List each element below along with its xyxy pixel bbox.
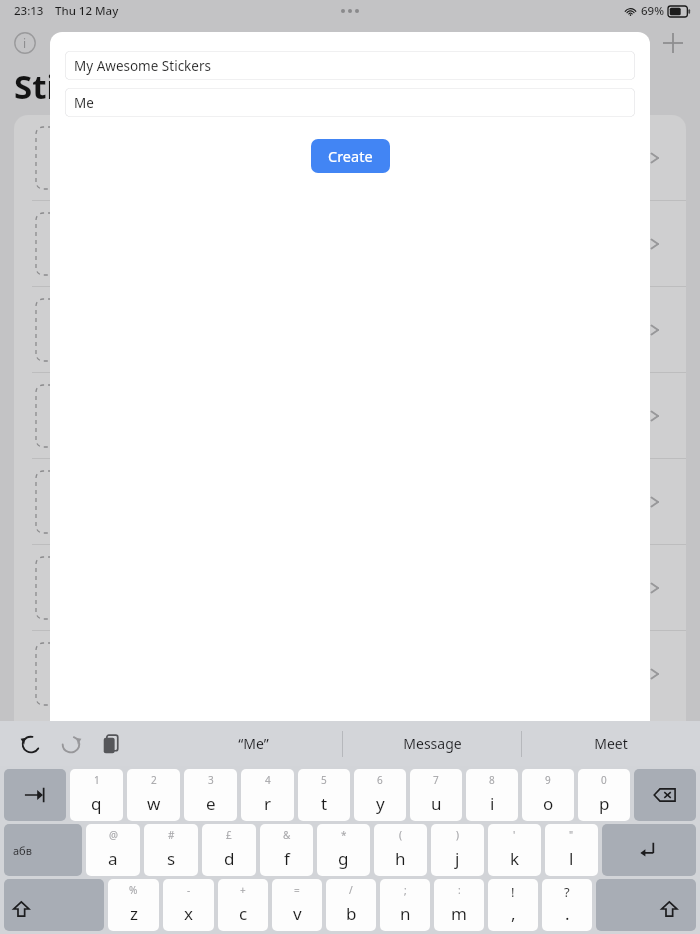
staticText: 5 bbox=[321, 773, 327, 787]
button[interactable]: Add bbox=[656, 26, 690, 60]
button[interactable]: : bbox=[434, 879, 484, 931]
staticText: 8 bbox=[489, 773, 495, 787]
staticText: ! bbox=[511, 883, 515, 901]
button[interactable]: Key bbox=[602, 824, 696, 876]
staticText: 4 bbox=[265, 773, 271, 787]
button[interactable]: @ bbox=[86, 824, 140, 876]
button[interactable]: ; bbox=[380, 879, 430, 931]
staticText: Sti bbox=[14, 64, 57, 109]
staticText: v bbox=[293, 902, 302, 925]
staticText: * bbox=[341, 828, 347, 842]
staticText: r bbox=[264, 792, 272, 815]
button[interactable]: 1 bbox=[70, 769, 123, 821]
button[interactable]: 6 bbox=[354, 769, 406, 821]
button[interactable]: Key bbox=[4, 879, 104, 931]
button[interactable]: # bbox=[144, 824, 198, 876]
button[interactable]: " bbox=[545, 824, 598, 876]
button[interactable]: - bbox=[163, 879, 214, 931]
button[interactable]: / bbox=[326, 879, 376, 931]
staticText: ( bbox=[399, 828, 402, 842]
button[interactable]: ( bbox=[374, 824, 427, 876]
staticText: Message bbox=[403, 734, 462, 753]
button[interactable]: 4 bbox=[241, 769, 294, 821]
staticText: e bbox=[206, 792, 216, 815]
button[interactable]: & bbox=[260, 824, 313, 876]
button[interactable]: = bbox=[272, 879, 322, 931]
staticText: 2 bbox=[151, 773, 157, 787]
button[interactable]: Meet bbox=[522, 721, 700, 766]
staticText: Thu 12 May bbox=[55, 3, 119, 19]
button[interactable]: Redo bbox=[58, 731, 84, 757]
button[interactable] bbox=[14, 459, 686, 544]
button[interactable]: Create bbox=[311, 139, 390, 173]
button[interactable]: * bbox=[317, 824, 370, 876]
button[interactable]: 5 bbox=[298, 769, 350, 821]
staticText: £ bbox=[226, 828, 232, 842]
button[interactable]: % bbox=[108, 879, 159, 931]
staticText: & bbox=[283, 828, 291, 842]
staticText: 1 bbox=[94, 773, 100, 787]
staticText: 7 bbox=[433, 773, 439, 787]
button[interactable]: 3 bbox=[184, 769, 237, 821]
button[interactable]: Paste bbox=[98, 731, 124, 757]
staticText: n bbox=[400, 902, 411, 925]
staticText: i bbox=[23, 35, 27, 51]
staticText: b bbox=[346, 902, 357, 925]
button[interactable]: ) bbox=[431, 824, 484, 876]
button[interactable]: Info bbox=[8, 26, 42, 60]
staticText: x bbox=[184, 902, 193, 925]
button[interactable]: ' bbox=[488, 824, 541, 876]
staticText: p bbox=[599, 792, 610, 815]
button[interactable]: Undo bbox=[18, 731, 44, 757]
staticText: q bbox=[91, 792, 102, 815]
button[interactable]: ! bbox=[488, 879, 538, 931]
staticText: Me bbox=[74, 94, 94, 112]
button[interactable] bbox=[14, 287, 686, 372]
staticText: 23:13 bbox=[14, 3, 44, 19]
button[interactable]: Key bbox=[596, 879, 696, 931]
staticText: g bbox=[338, 847, 349, 870]
staticText: ) bbox=[456, 828, 459, 842]
staticText: 9 bbox=[545, 773, 551, 787]
staticText: / bbox=[349, 883, 353, 897]
staticText: k bbox=[510, 847, 520, 870]
button[interactable]: + bbox=[218, 879, 268, 931]
staticText: - bbox=[187, 883, 191, 897]
staticText: i bbox=[490, 792, 495, 815]
button[interactable]: “Me” bbox=[164, 721, 342, 766]
button[interactable]: Key bbox=[4, 769, 66, 821]
staticText: ? bbox=[564, 883, 570, 901]
button[interactable] bbox=[14, 631, 686, 716]
button[interactable]: Message bbox=[343, 721, 521, 766]
staticText: m bbox=[451, 902, 467, 925]
staticText: " bbox=[569, 828, 574, 842]
staticText: . bbox=[565, 902, 570, 925]
staticText: z bbox=[130, 902, 138, 925]
button[interactable]: Me bbox=[65, 88, 635, 117]
button[interactable]: £ bbox=[202, 824, 256, 876]
button[interactable]: 7 bbox=[410, 769, 462, 821]
button[interactable]: ? bbox=[542, 879, 592, 931]
button[interactable] bbox=[14, 545, 686, 630]
button[interactable]: 9 bbox=[522, 769, 574, 821]
staticText: ' bbox=[513, 828, 516, 842]
staticText: y bbox=[376, 792, 385, 815]
staticText: f bbox=[284, 847, 290, 870]
staticText: s bbox=[167, 847, 176, 870]
staticText: , bbox=[511, 902, 516, 925]
button[interactable]: My Awesome Stickers bbox=[65, 51, 635, 80]
button[interactable] bbox=[14, 373, 686, 458]
button[interactable]: 8 bbox=[466, 769, 518, 821]
button[interactable] bbox=[14, 201, 686, 286]
staticText: My Awesome Stickers bbox=[74, 57, 211, 75]
staticText: абв bbox=[13, 843, 32, 858]
button[interactable]: 0 bbox=[578, 769, 630, 821]
button[interactable]: абв bbox=[4, 824, 82, 876]
staticText: “Me” bbox=[238, 734, 269, 753]
staticText: t bbox=[321, 792, 328, 815]
button[interactable] bbox=[14, 115, 686, 200]
button[interactable]: 2 bbox=[127, 769, 180, 821]
staticText: % bbox=[129, 883, 138, 897]
staticText: c bbox=[239, 902, 248, 925]
button[interactable]: Key bbox=[634, 769, 696, 821]
